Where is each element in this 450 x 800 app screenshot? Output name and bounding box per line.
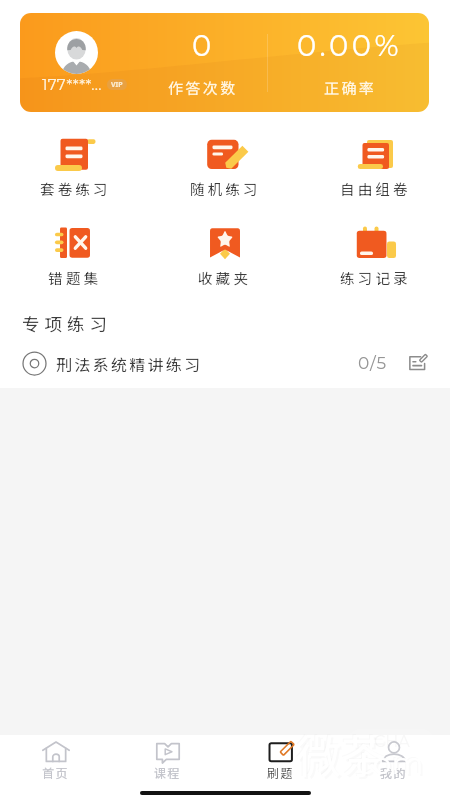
staticText: com: [358, 747, 426, 784]
staticText: 177****...: [42, 75, 102, 93]
staticText: 收藏夹: [198, 267, 252, 288]
staticText: 错题集: [48, 267, 102, 288]
other: Edit: [407, 352, 429, 374]
staticText: 课程: [154, 764, 182, 781]
staticText: 微茶: [295, 720, 386, 785]
staticText: 0/5: [358, 353, 388, 374]
staticText: 随机练习: [190, 178, 261, 199]
staticText: 首页: [42, 764, 70, 781]
staticText: 专项练习: [22, 311, 112, 336]
staticText: CHA: [374, 732, 410, 752]
button[interactable]: 我的: [337, 735, 450, 783]
staticText: 刑法系统精讲练习: [56, 352, 203, 375]
button[interactable]: Target: [0, 343, 450, 383]
staticText: 自由组卷: [340, 178, 411, 199]
other: Target: [22, 351, 47, 376]
staticText: com: [356, 745, 424, 782]
staticText: 0.00%: [297, 28, 403, 63]
staticText: 练习记录: [340, 267, 411, 288]
staticText: 刷题: [267, 764, 295, 781]
staticText: 套卷练习: [40, 178, 111, 199]
staticText: 微茶: [298, 723, 389, 788]
button[interactable]: 收藏夹: [150, 225, 300, 285]
staticText: 作答次数: [168, 77, 238, 99]
button[interactable]: 首页: [0, 735, 112, 783]
staticText: 我的: [380, 764, 408, 781]
button[interactable]: 课程: [112, 735, 224, 783]
button[interactable]: 177****...: [20, 13, 429, 112]
button[interactable]: 套卷练习: [0, 136, 150, 196]
button[interactable]: 错题集: [0, 225, 150, 285]
staticText: 正确率: [324, 77, 377, 99]
button[interactable]: 随机练习: [150, 136, 300, 196]
staticText: 0: [192, 28, 215, 63]
button[interactable]: 刷题: [224, 735, 337, 783]
button[interactable]: 练习记录: [300, 225, 450, 285]
button[interactable]: 自由组卷: [300, 136, 450, 196]
staticText: 微茶: [296, 721, 387, 786]
staticText: com: [355, 744, 423, 781]
staticText: VIP: [111, 80, 123, 90]
